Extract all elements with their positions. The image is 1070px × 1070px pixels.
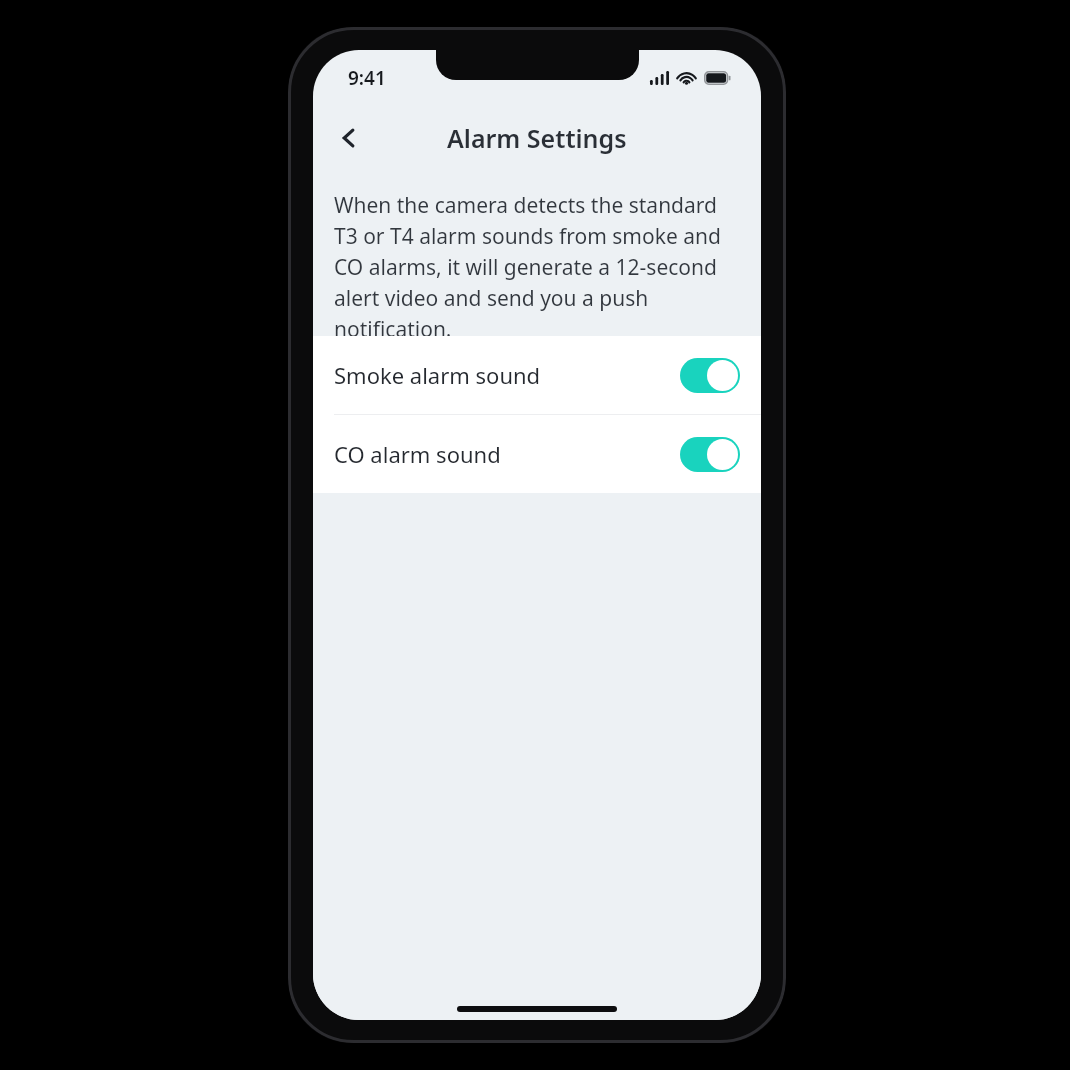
button[interactable]: Back — [323, 112, 375, 164]
button[interactable]: Toggle on — [680, 437, 740, 472]
button[interactable]: Smoke alarm sound — [313, 336, 761, 414]
button[interactable]: CO alarm sound — [313, 415, 761, 493]
staticText: Smoke alarm sound — [334, 360, 680, 390]
staticText: When the camera detects the standard T3 … — [334, 191, 734, 336]
staticText: 9:41 — [348, 65, 386, 91]
button[interactable]: Toggle on — [680, 358, 740, 393]
staticText: CO alarm sound — [334, 439, 680, 469]
staticText: Alarm Settings — [447, 121, 627, 155]
